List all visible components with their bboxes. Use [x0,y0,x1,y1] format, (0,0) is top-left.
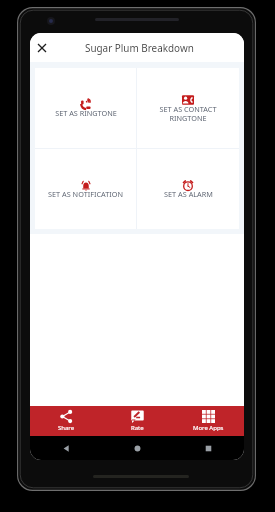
staticText: SET AS RINGTONE [55,108,117,118]
staticText: SET AS CONTACT RINGTONE [159,104,217,123]
staticText: Share [58,424,75,432]
button[interactable]: Share [30,406,102,436]
button[interactable]: SET AS ALARM [137,149,239,229]
button[interactable]: SET AS RINGTONE [35,68,136,148]
staticText: SET AS NOTIFICATION [48,189,123,199]
staticText: SET AS ALARM [164,189,213,199]
staticText: More Apps [193,424,224,432]
staticText: Rate [131,424,144,432]
staticText: Sugar Plum Breakdown [85,41,194,54]
button[interactable]: Rate [102,406,173,436]
button[interactable]: SET AS NOTIFICATION [35,149,136,229]
button[interactable]: Close [31,37,53,59]
button[interactable]: More Apps [173,406,244,436]
button[interactable]: SET AS CONTACT RINGTONE [137,68,239,148]
